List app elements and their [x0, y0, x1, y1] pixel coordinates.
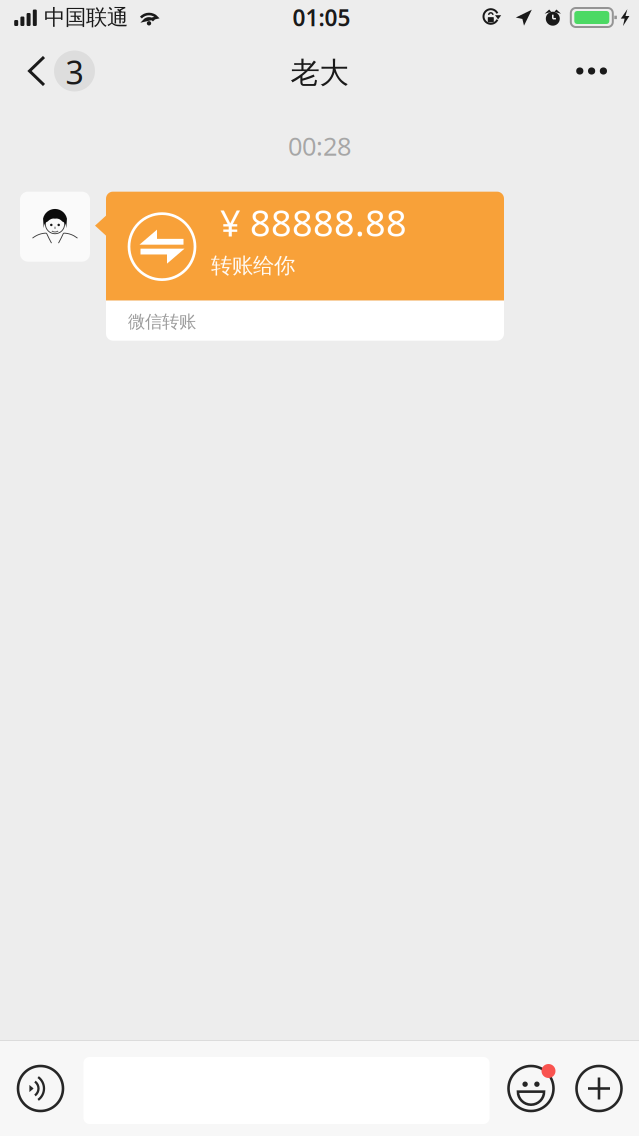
staticText: 微信转账	[128, 311, 196, 332]
button[interactable]: Emoji	[497, 1041, 565, 1136]
button[interactable]: More	[554, 35, 639, 107]
staticText: 老大	[290, 55, 348, 91]
button[interactable]: Voice message	[9, 1041, 72, 1136]
staticText: 中国联通	[44, 4, 128, 31]
button[interactable]: Message input field	[72, 1041, 497, 1136]
staticText: 01:05	[292, 2, 350, 32]
staticText: 转账给你	[211, 252, 295, 279]
staticText: 00:28	[288, 129, 351, 163]
staticText: 3	[65, 51, 83, 93]
button[interactable]: Back, 3 unread	[0, 35, 111, 107]
button[interactable]: 微信转账 ¥ 88888.88 转账给你	[106, 192, 504, 341]
button[interactable]: More options	[565, 1041, 633, 1136]
staticText: ¥ 88888.88	[220, 199, 407, 246]
